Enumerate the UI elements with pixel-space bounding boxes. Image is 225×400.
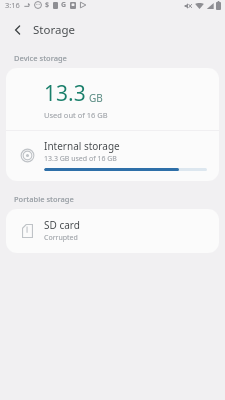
staticText: 3:16 [5, 0, 20, 10]
button[interactable]: SD card [6, 209, 219, 253]
staticText: Storage [33, 22, 75, 38]
button[interactable]: Internal storage [6, 131, 219, 180]
button[interactable]: 13.3 [6, 68, 219, 130]
staticText: 13.3 [44, 79, 86, 108]
staticText: Device storage [14, 53, 67, 63]
staticText: GB [89, 91, 103, 105]
staticText: 13.3 GB used of 16 GB [44, 154, 117, 164]
staticText: $ [45, 0, 50, 10]
staticText: Used out of 16 GB [44, 110, 108, 120]
staticText: Corrupted [44, 233, 78, 243]
staticText: Portable storage [14, 194, 74, 204]
staticText: Internal storage [44, 139, 120, 153]
button[interactable]: Back [8, 20, 28, 40]
staticText: SD card [44, 218, 80, 232]
staticText: G [61, 0, 67, 10]
